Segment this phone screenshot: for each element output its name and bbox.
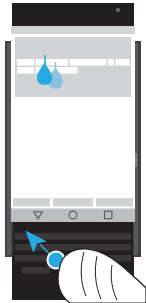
button[interactable]: Swipe up from bottom edge gesture illust… bbox=[0, 0, 146, 303]
